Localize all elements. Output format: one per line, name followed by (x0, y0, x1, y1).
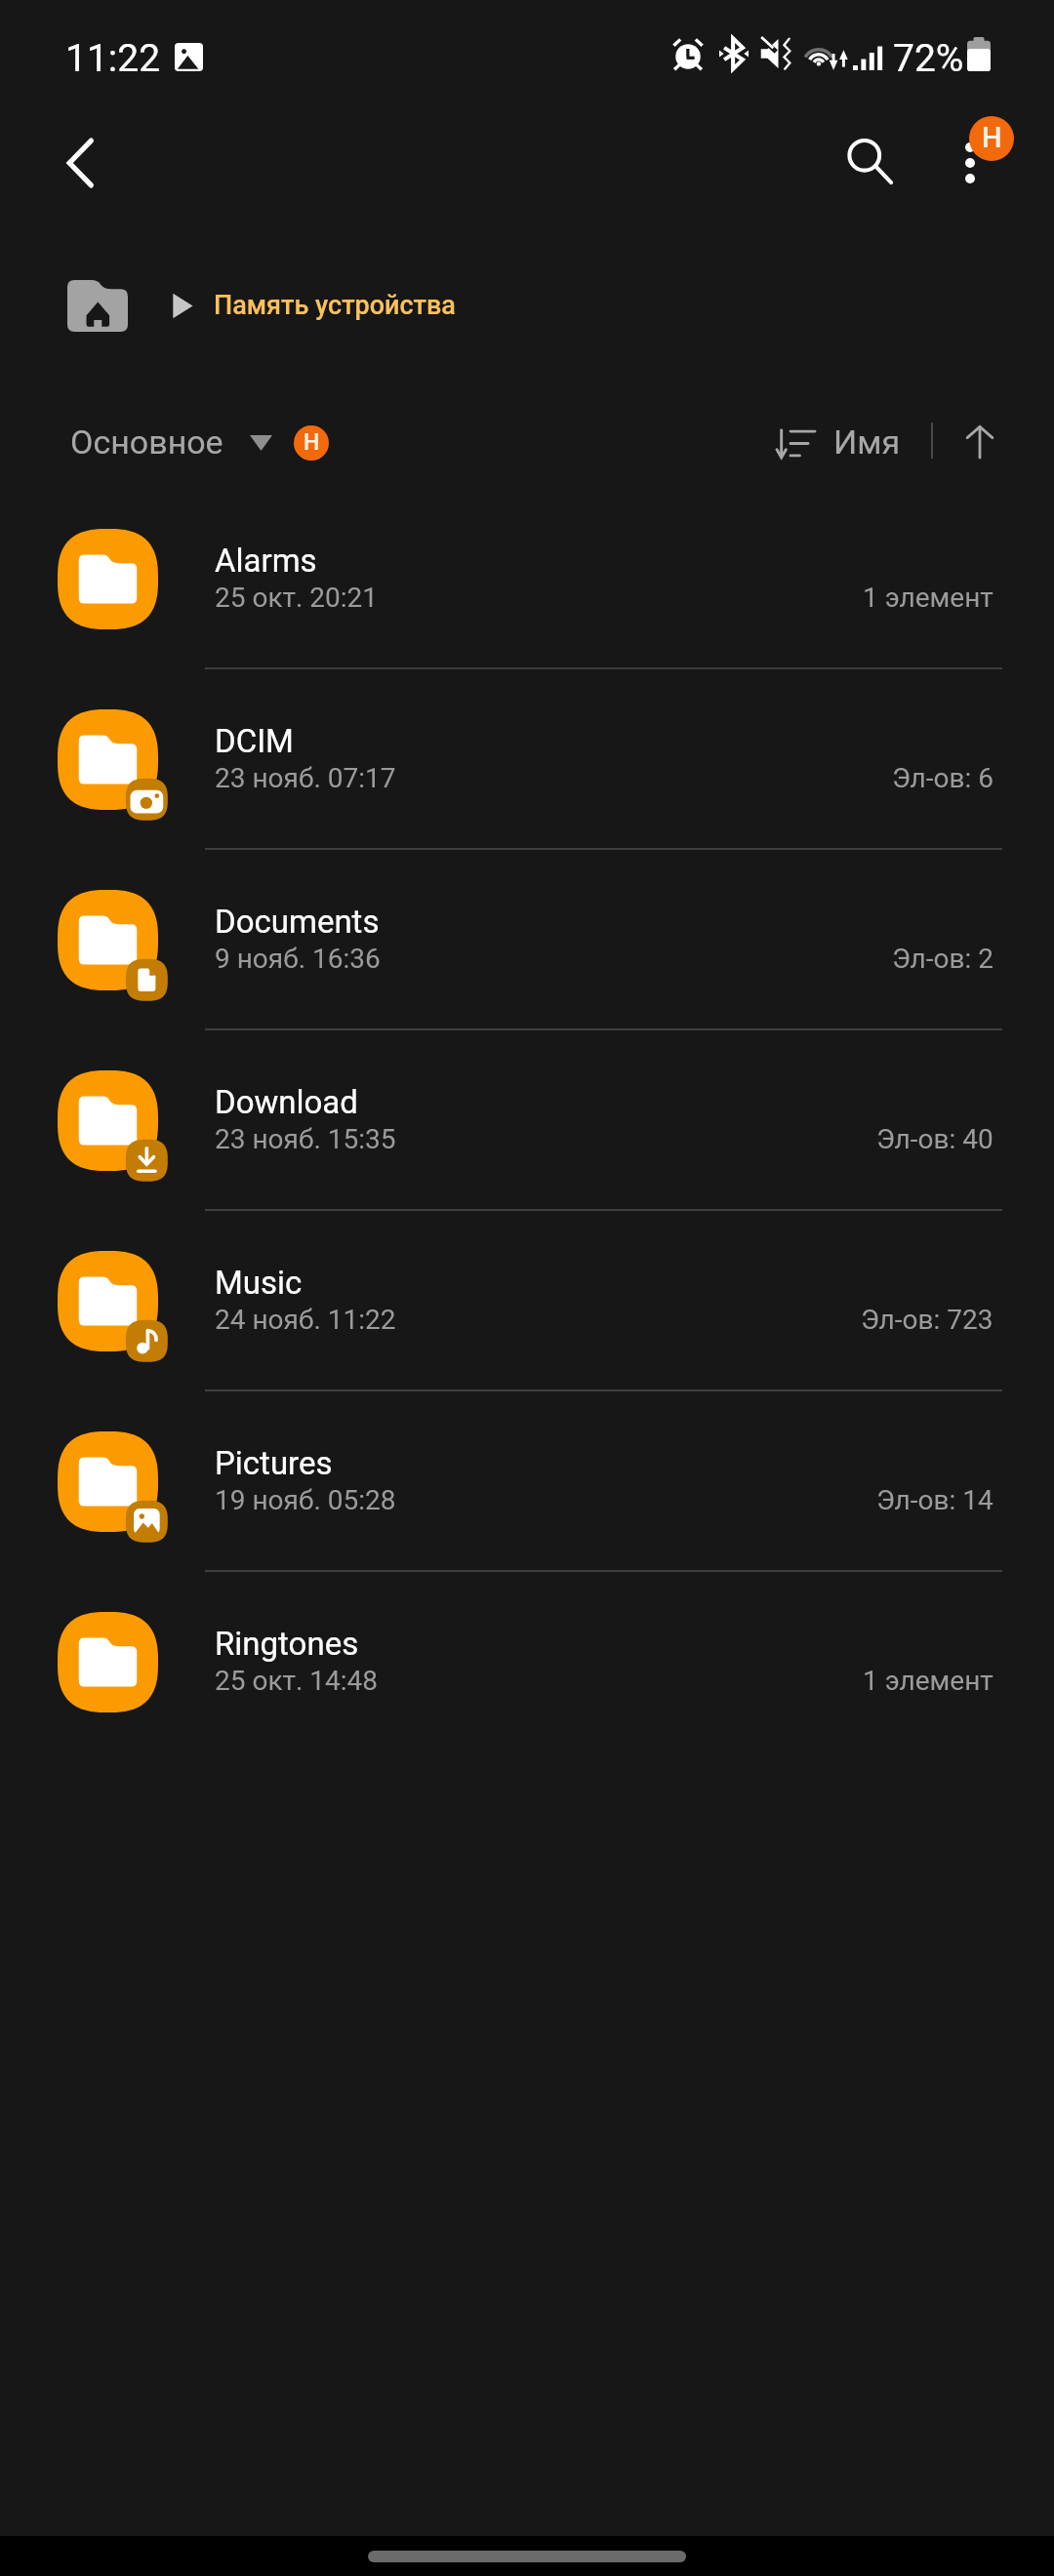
staticText: Эл-ов: 2 (892, 943, 993, 975)
button[interactable]: DCIM (0, 669, 1054, 850)
staticText: Основное (70, 423, 223, 462)
staticText: H (982, 121, 1002, 154)
staticText: 9 нояб. 16:36 (215, 943, 381, 975)
staticText: 11:22 (65, 36, 161, 81)
button[interactable]: Имя (777, 402, 901, 484)
staticText: Эл-ов: 723 (861, 1304, 993, 1336)
staticText: Download (215, 1083, 358, 1121)
staticText: 19 нояб. 05:28 (215, 1484, 396, 1516)
staticText: DCIM (215, 722, 294, 760)
button[interactable]: Music (0, 1211, 1054, 1391)
button[interactable]: Documents (0, 850, 1054, 1030)
staticText: Имя (833, 423, 901, 462)
staticText: Pictures (215, 1444, 333, 1482)
button[interactable]: Основное (70, 402, 329, 484)
button[interactable]: Ringtones (0, 1572, 1054, 1752)
button[interactable]: More options (923, 116, 1017, 210)
staticText: 24 нояб. 11:22 (215, 1304, 396, 1336)
staticText: Documents (215, 903, 380, 941)
staticText: Память устройства (214, 290, 456, 321)
staticText: 23 нояб. 07:17 (215, 762, 396, 794)
button[interactable]: Home folder (67, 280, 128, 332)
staticText: Ringtones (215, 1625, 359, 1663)
staticText: 23 нояб. 15:35 (215, 1123, 396, 1155)
button[interactable]: Back (33, 116, 127, 210)
staticText: 1 элемент (863, 582, 993, 614)
button[interactable]: Alarms (0, 489, 1054, 669)
staticText: 72% (893, 36, 964, 81)
staticText: Эл-ов: 14 (876, 1484, 993, 1516)
button[interactable]: Search (824, 115, 917, 209)
staticText: Alarms (215, 542, 317, 580)
button[interactable]: Download (0, 1030, 1054, 1211)
button[interactable]: Sort ascending (949, 411, 1011, 473)
staticText: 1 элемент (863, 1665, 993, 1697)
staticText: 25 окт. 20:21 (215, 582, 379, 614)
staticText: Эл-ов: 6 (892, 762, 993, 794)
button[interactable]: Память устройства (214, 290, 456, 321)
staticText: 25 окт. 14:48 (215, 1665, 379, 1697)
staticText: H (304, 429, 320, 456)
staticText: Эл-ов: 40 (876, 1123, 993, 1155)
button[interactable]: Pictures (0, 1391, 1054, 1572)
staticText: Music (215, 1264, 303, 1302)
